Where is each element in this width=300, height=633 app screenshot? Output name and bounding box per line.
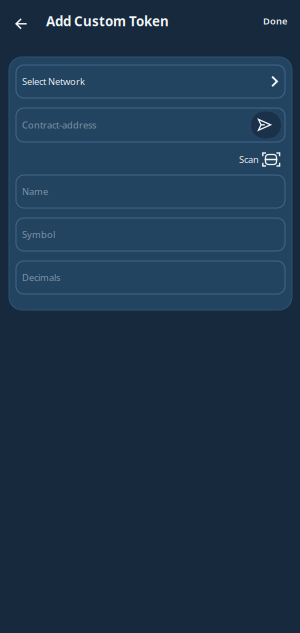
staticText: Symbol <box>22 228 55 241</box>
staticText: Name <box>22 185 48 198</box>
staticText: Select Network <box>22 75 85 88</box>
staticText: Contract-address <box>22 119 96 131</box>
staticText: Add Custom Token <box>46 12 169 30</box>
button[interactable]: Symbol <box>16 218 285 251</box>
button[interactable]: Scan <box>239 151 285 168</box>
staticText: Scan <box>239 153 259 166</box>
button[interactable]: Select Network <box>16 65 285 98</box>
button[interactable]: Send <box>251 111 281 138</box>
staticText: Decimals <box>22 271 60 284</box>
button[interactable]: Name <box>16 175 285 208</box>
button[interactable]: Back <box>7 3 35 39</box>
button[interactable]: Done <box>251 6 300 36</box>
staticText: Done <box>263 15 287 27</box>
button[interactable]: Decimals <box>16 261 285 294</box>
